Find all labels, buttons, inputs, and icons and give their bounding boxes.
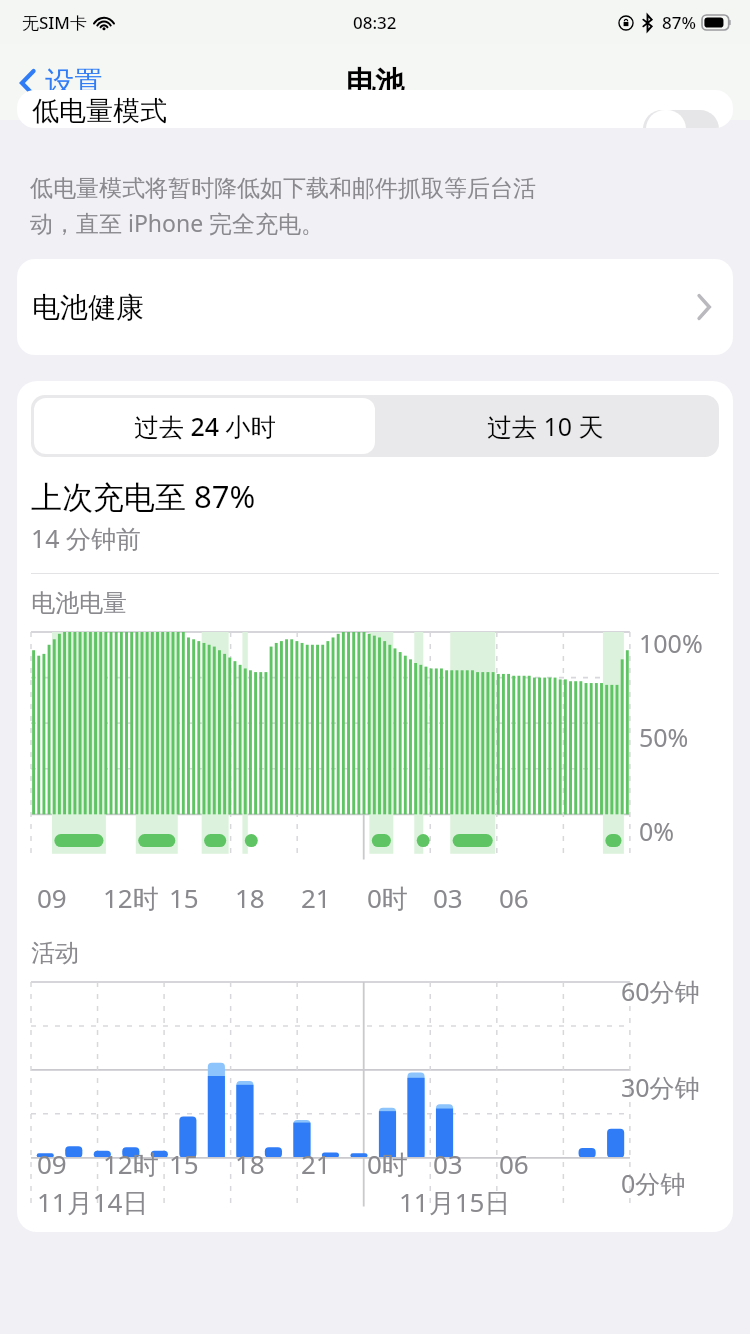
staticText: 50% bbox=[639, 720, 689, 754]
staticText: 09 bbox=[37, 880, 67, 915]
button[interactable]: 设置 bbox=[14, 58, 109, 107]
staticText: 18 bbox=[235, 1146, 265, 1181]
staticText: 06 bbox=[499, 1146, 529, 1181]
staticText: 过去 24 小时 bbox=[134, 409, 276, 443]
staticText: 100% bbox=[639, 626, 703, 660]
staticText: 11月15日 bbox=[399, 1184, 511, 1220]
staticText: 低电量模式将暂时降低如下载和邮件抓取等后台活 动，直至 iPhone 完全充电。 bbox=[30, 174, 536, 239]
staticText: 0时 bbox=[367, 880, 408, 916]
staticText: 15 bbox=[169, 880, 199, 915]
staticText: 12时 bbox=[103, 1146, 159, 1182]
staticText: 21 bbox=[301, 1146, 331, 1181]
staticText: 60分钟 bbox=[621, 974, 700, 1008]
button[interactable]: 低电量模式 bbox=[17, 90, 733, 128]
staticText: 87% bbox=[662, 11, 696, 34]
staticText: 0时 bbox=[367, 1146, 408, 1182]
staticText: 过去 10 天 bbox=[487, 409, 604, 443]
staticText: 无SIM卡 bbox=[22, 11, 87, 34]
staticText: 09 bbox=[37, 1146, 67, 1181]
staticText: 21 bbox=[301, 880, 331, 915]
staticText: 03 bbox=[433, 880, 463, 915]
staticText: 0% bbox=[639, 814, 675, 848]
staticText: 低电量模式 bbox=[32, 94, 167, 128]
button[interactable]: 过去 10 天 bbox=[375, 398, 716, 454]
staticText: 电池健康 bbox=[32, 290, 144, 325]
staticText: 11月14日 bbox=[37, 1184, 149, 1220]
staticText: 08:32 bbox=[353, 11, 397, 34]
staticText: 14 分钟前 bbox=[31, 521, 142, 555]
staticText: 12时 bbox=[103, 880, 159, 916]
button[interactable]: 电池健康 bbox=[17, 259, 733, 355]
staticText: 03 bbox=[433, 1146, 463, 1181]
staticText: 06 bbox=[499, 880, 529, 915]
staticText: 18 bbox=[235, 880, 265, 915]
button[interactable]: 过去 24 小时 bbox=[34, 398, 375, 454]
staticText: 电池 bbox=[346, 64, 404, 101]
staticText: 设置 bbox=[45, 64, 103, 101]
staticText: 0分钟 bbox=[621, 1166, 686, 1200]
staticText: 上次充电至 87% bbox=[31, 475, 256, 517]
staticText: 电池电量 bbox=[31, 588, 127, 618]
staticText: 30分钟 bbox=[621, 1070, 700, 1104]
staticText: 15 bbox=[169, 1146, 199, 1181]
staticText: 活动 bbox=[31, 938, 79, 968]
